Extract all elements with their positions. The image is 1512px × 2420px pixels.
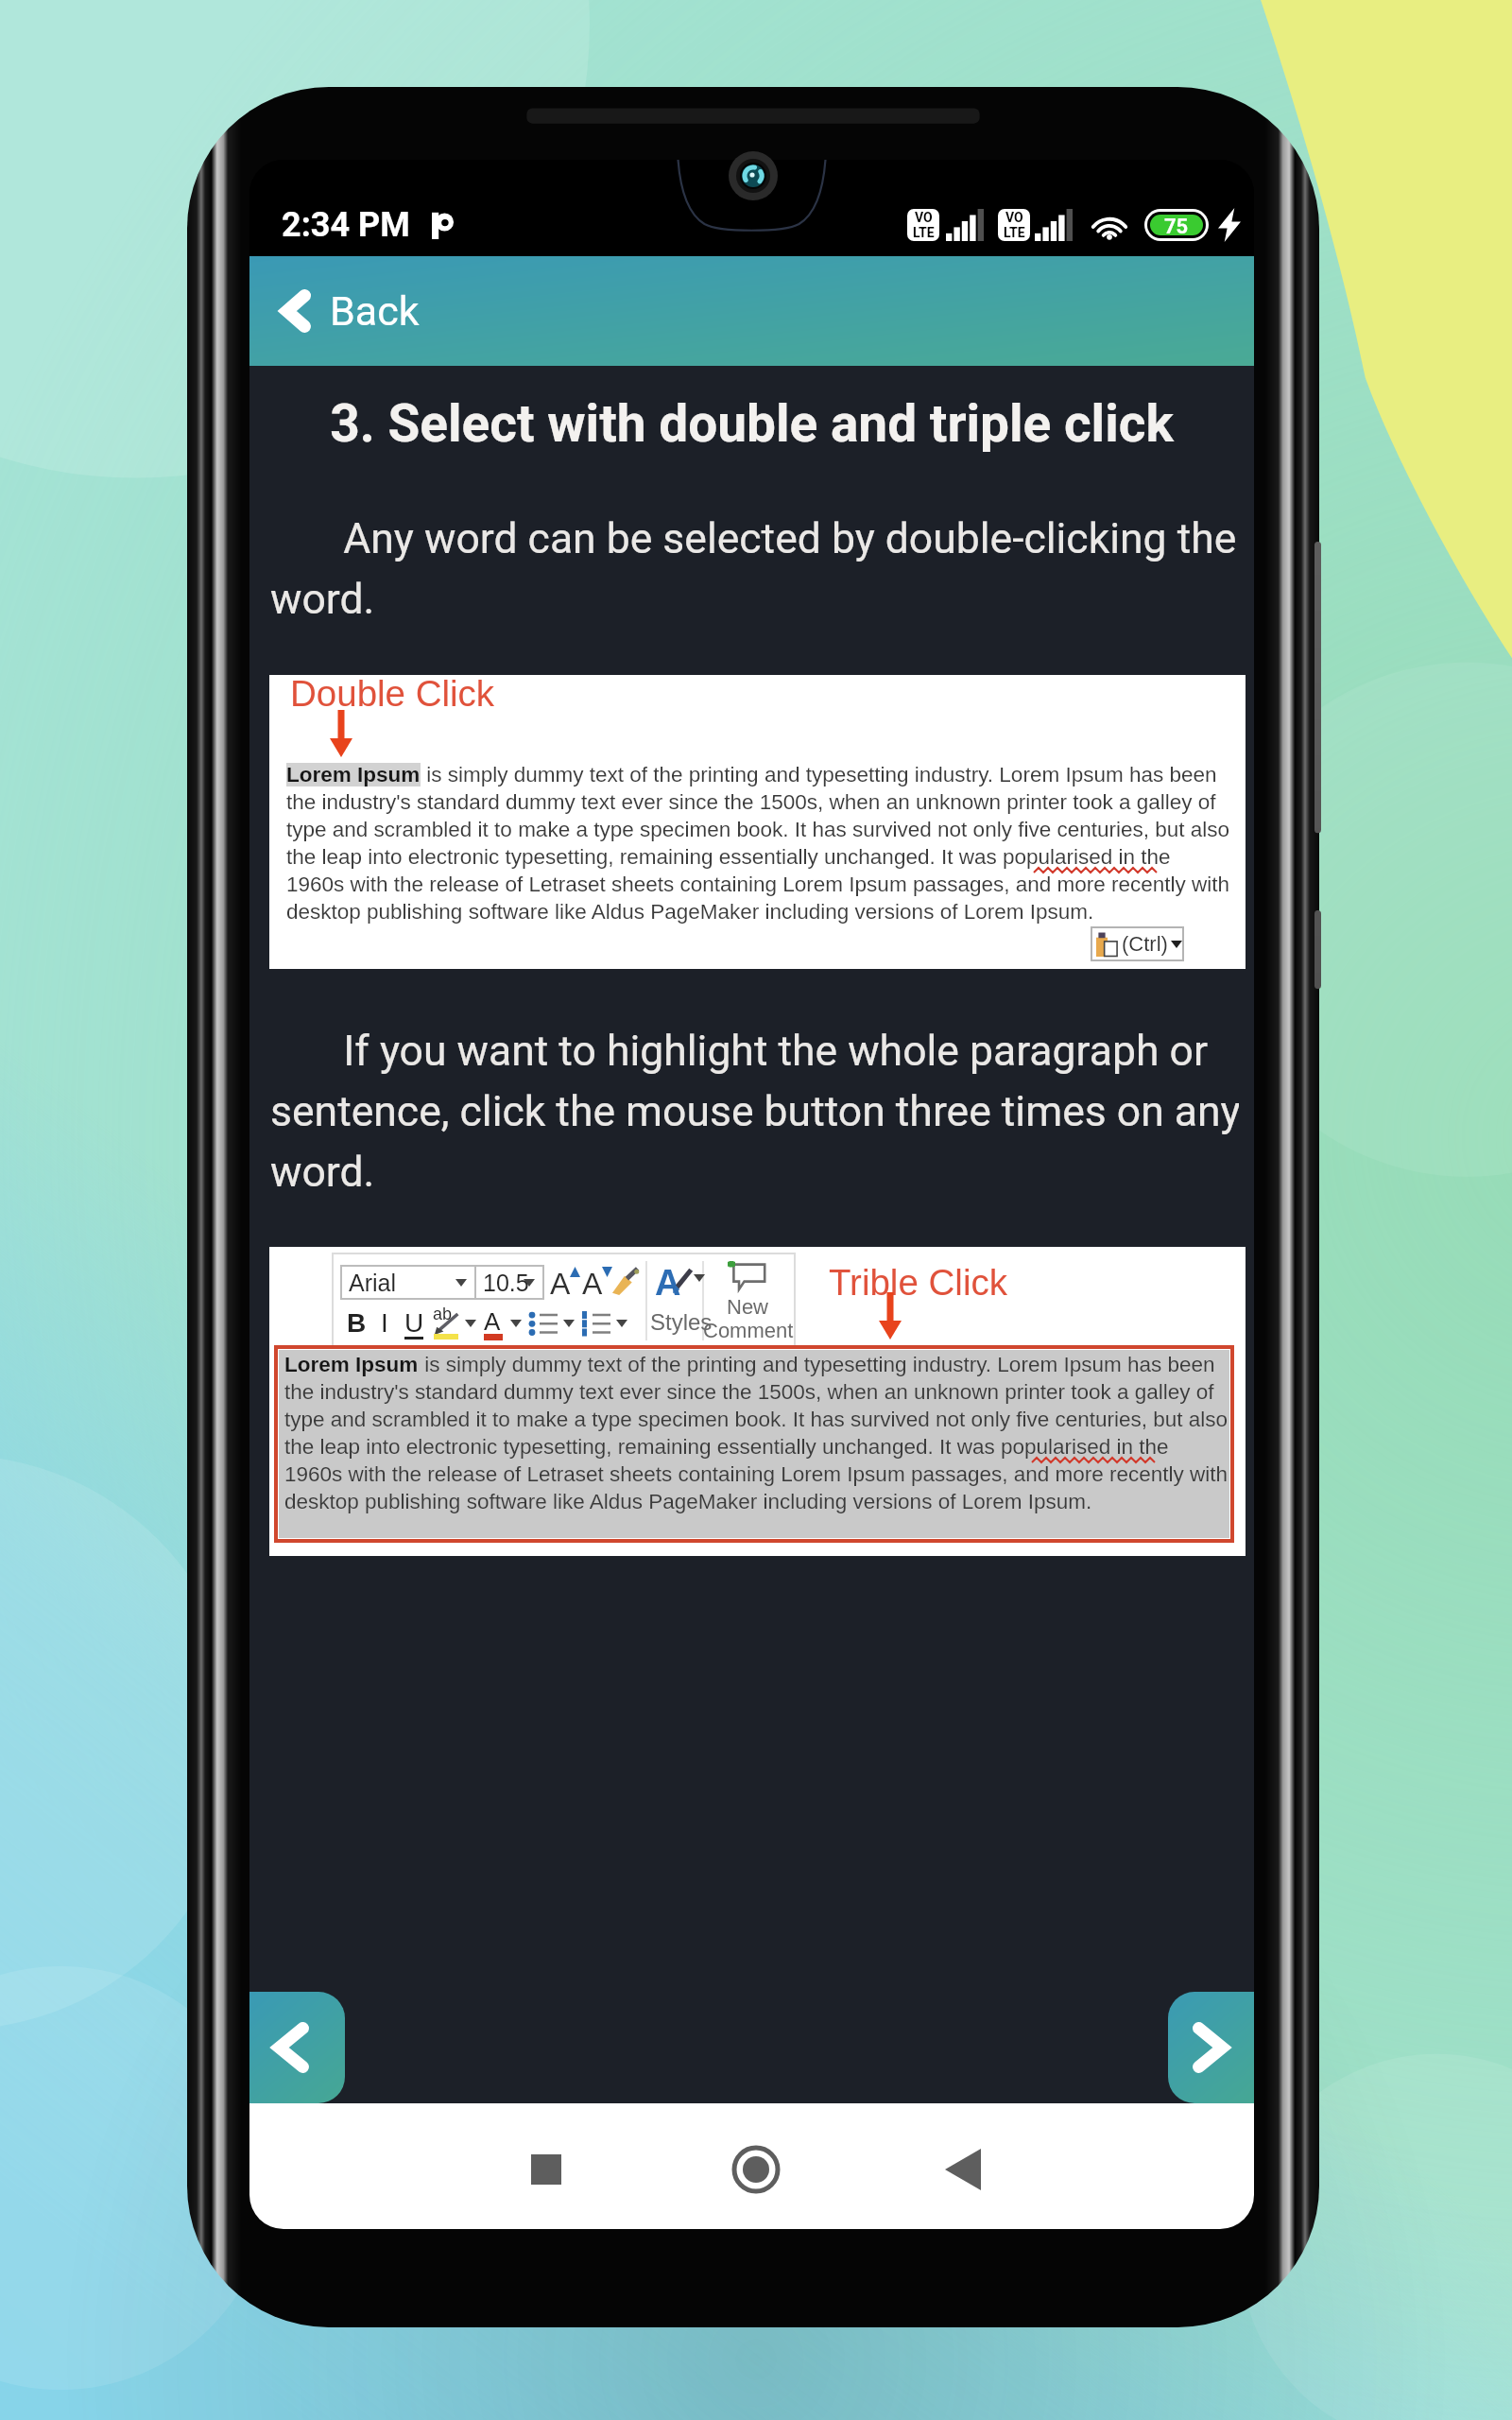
staticText: 2:34 PM [282, 205, 410, 245]
button[interactable]: Back [249, 276, 444, 346]
button[interactable]: Previous page [249, 1992, 345, 2103]
staticText: VO [915, 210, 933, 225]
staticText: I [381, 1308, 388, 1338]
staticText: ab [433, 1305, 453, 1323]
staticText: Double Click [290, 673, 495, 714]
button[interactable]: Recent apps [501, 2124, 592, 2215]
staticText: the industry's standard dummy text ever … [286, 790, 1216, 814]
staticText: word. [270, 1148, 1239, 1197]
staticText: A [655, 1263, 681, 1303]
staticText: desktop publishing software like Aldus P… [286, 900, 1094, 924]
staticText: New [727, 1295, 769, 1319]
staticText: 75 [1164, 215, 1189, 235]
staticText: Back [330, 287, 420, 335]
staticText: A [550, 1267, 571, 1299]
button[interactable]: Next page [1168, 1992, 1254, 2103]
staticText: the leap into electronic typesetting, re… [286, 845, 1171, 869]
staticText: U [404, 1308, 424, 1338]
button[interactable]: Back [918, 2124, 1008, 2215]
staticText: A [484, 1307, 501, 1335]
staticText: the industry's standard dummy text ever … [284, 1380, 1214, 1404]
staticText: Comment [703, 1319, 794, 1342]
staticText: (Ctrl) [1122, 932, 1168, 956]
staticText: the leap into electronic typesetting, re… [284, 1435, 1169, 1459]
button[interactable]: Home [711, 2124, 801, 2215]
staticText: Trible Click [829, 1262, 1007, 1303]
staticText: 1960s with the release of Letraset sheet… [286, 873, 1230, 896]
staticText: word. [270, 575, 1239, 624]
staticText: type and scrambled it to make a type spe… [284, 1408, 1228, 1431]
staticText: 1960s with the release of Letraset sheet… [284, 1462, 1228, 1486]
staticText: If you want to highlight the whole parag… [270, 1027, 1239, 1076]
staticText: B [347, 1308, 367, 1338]
staticText: LTE [1004, 225, 1025, 240]
staticText: A [582, 1267, 603, 1299]
staticText: 3. Select with double and triple click [249, 393, 1254, 454]
staticText: desktop publishing software like Aldus P… [284, 1490, 1092, 1513]
staticText: is simply dummy text of the printing and… [421, 763, 1217, 786]
staticText: Styles [650, 1309, 713, 1335]
staticText: LTE [913, 225, 935, 240]
staticText: Lorem Ipsum [284, 1353, 419, 1376]
staticText: Lorem Ipsum [286, 763, 421, 786]
staticText: Arial [349, 1270, 397, 1296]
staticText: 10.5 [483, 1270, 529, 1296]
staticText: sentence, click the mouse button three t… [270, 1087, 1239, 1136]
staticText: is simply dummy text of the printing and… [419, 1353, 1215, 1376]
staticText: type and scrambled it to make a type spe… [286, 818, 1230, 841]
staticText: VO [1005, 210, 1023, 225]
staticText: Any word can be selected by double-click… [270, 514, 1239, 563]
